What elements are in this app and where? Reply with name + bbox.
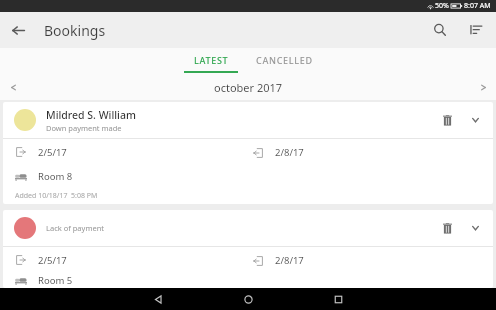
staticText: LATEST	[194, 54, 229, 66]
staticText: CANCELLED	[256, 54, 313, 66]
button[interactable]: Previous month	[0, 74, 26, 100]
staticText: 2/8/17	[275, 146, 304, 159]
staticText: 2/5/17	[38, 146, 67, 159]
button[interactable]: Sort	[458, 12, 494, 48]
staticText: 8:07 AM	[464, 1, 491, 11]
button[interactable]: Search	[422, 12, 458, 48]
staticText: Down payment made	[46, 123, 122, 133]
button[interactable]: Recents	[312, 288, 364, 310]
staticText: Bookings	[44, 21, 106, 40]
staticText: 2/5/17	[38, 254, 67, 267]
button[interactable]: Expand	[463, 108, 487, 132]
button[interactable]: Next month	[470, 74, 496, 100]
button[interactable]: Mildred S. William	[3, 102, 493, 204]
button[interactable]: Home	[222, 288, 274, 310]
staticText: Room 8	[38, 170, 73, 183]
staticText: Added 10/18/17 5:08 PM	[15, 191, 98, 201]
button[interactable]: Lack of payment	[3, 210, 493, 288]
staticText: Room 5	[38, 274, 73, 287]
button[interactable]: Expand	[463, 216, 487, 240]
button[interactable]: Delete	[435, 108, 459, 132]
button[interactable]: LATEST	[184, 48, 238, 74]
staticText: 2/8/17	[275, 254, 304, 267]
staticText: 50%	[435, 1, 449, 11]
staticText: Lack of payment	[46, 223, 104, 233]
staticText: Mildred S. William	[46, 108, 136, 122]
staticText: october 2017	[214, 80, 283, 95]
button[interactable]: Back	[0, 12, 36, 48]
button[interactable]: CANCELLED	[256, 48, 313, 74]
button[interactable]: Delete	[435, 216, 459, 240]
button[interactable]: Back	[132, 288, 184, 310]
